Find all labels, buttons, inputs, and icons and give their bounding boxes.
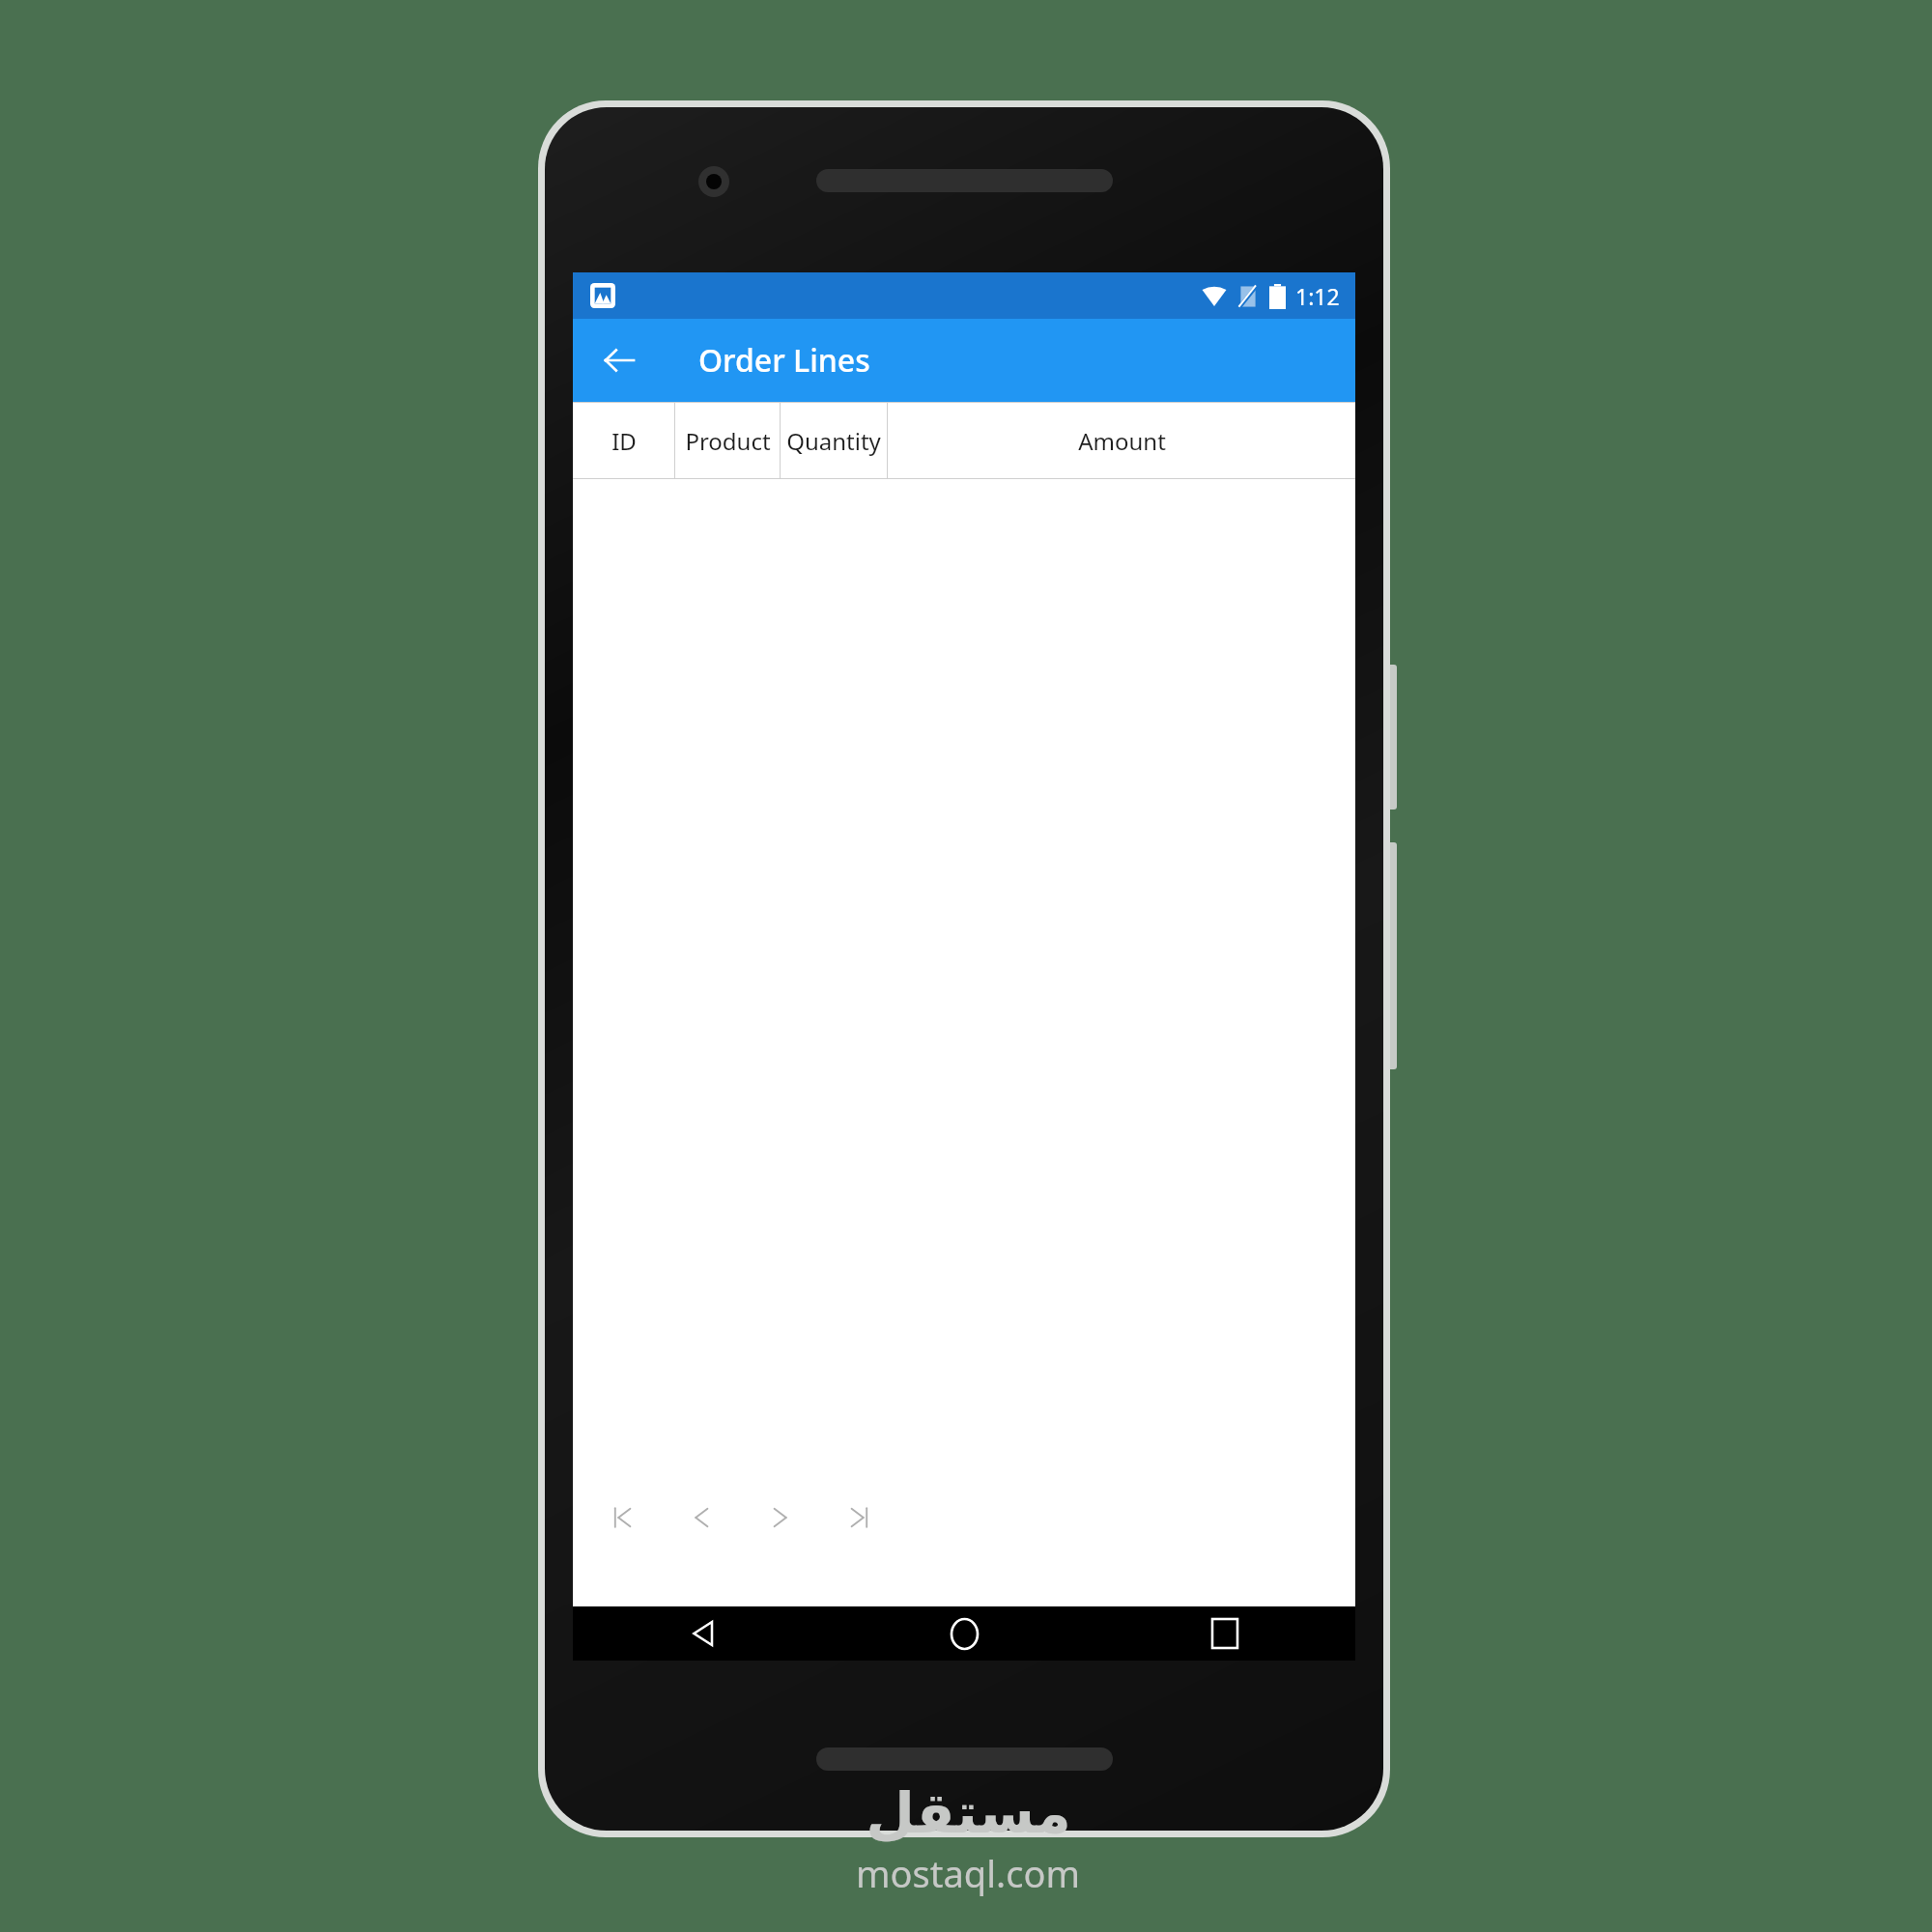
button[interactable]: Quantity xyxy=(781,402,887,479)
staticText: Amount xyxy=(1078,425,1166,457)
button[interactable]: Last page xyxy=(832,1492,882,1543)
button[interactable]: ID xyxy=(573,402,674,479)
button[interactable]: First page xyxy=(600,1492,650,1543)
staticText: مستقل xyxy=(866,1780,1071,1846)
staticText: 1:12 xyxy=(1295,281,1340,311)
staticText: Product xyxy=(685,425,771,457)
staticText: Quantity xyxy=(786,425,881,457)
button[interactable]: Previous page xyxy=(677,1492,727,1543)
button[interactable]: Next page xyxy=(754,1492,805,1543)
button[interactable]: Product xyxy=(675,402,780,479)
button[interactable]: Home xyxy=(834,1606,1094,1661)
staticText: ID xyxy=(611,425,637,457)
button[interactable]: Back xyxy=(573,1606,834,1661)
button[interactable]: Back xyxy=(592,333,646,387)
staticText: mostaql.com xyxy=(856,1848,1080,1898)
button[interactable]: Amount xyxy=(888,402,1355,479)
button[interactable]: Recents xyxy=(1094,1606,1355,1661)
staticText: Order Lines xyxy=(698,339,870,382)
